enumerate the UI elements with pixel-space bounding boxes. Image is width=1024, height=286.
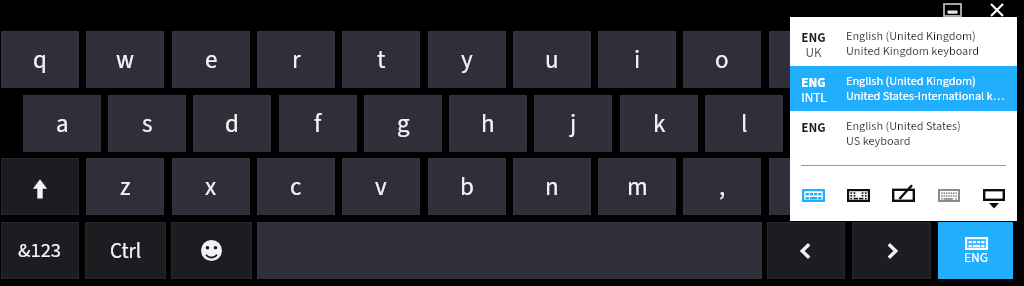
button[interactable]: y	[428, 31, 506, 88]
staticText: h	[481, 106, 495, 142]
button[interactable]: t	[342, 31, 420, 88]
staticText: INTL	[801, 88, 827, 106]
staticText: United Kingdom keyboard	[846, 43, 980, 60]
button[interactable]: Right	[852, 222, 931, 279]
staticText: United States-International k…	[846, 88, 1005, 105]
button[interactable]: i	[598, 31, 676, 88]
staticText: q	[33, 42, 47, 78]
staticText: x	[205, 169, 217, 205]
staticText: US keyboard	[846, 133, 911, 150]
staticText: ENG	[801, 28, 826, 46]
staticText: b	[460, 169, 474, 205]
staticText: j	[570, 106, 577, 142]
staticText: z	[120, 169, 131, 205]
staticText: k	[653, 106, 666, 142]
button[interactable]: o	[683, 31, 761, 88]
button[interactable]: a	[23, 95, 101, 152]
button[interactable]: k	[620, 95, 698, 152]
staticText: ,	[719, 169, 726, 205]
staticText: l	[741, 106, 748, 142]
button[interactable]: Shift	[1, 158, 79, 215]
staticText: m	[627, 169, 648, 205]
staticText: ENG	[964, 248, 988, 266]
staticText: r	[292, 42, 301, 78]
staticText: y	[461, 42, 473, 78]
button[interactable]: n	[513, 158, 591, 215]
staticText: g	[397, 106, 410, 142]
staticText: English (United Kingdom)	[846, 73, 976, 90]
staticText: English (United States)	[846, 118, 961, 135]
staticText: f	[314, 106, 322, 142]
button[interactable]: d	[193, 95, 271, 152]
button[interactable]: z	[86, 158, 164, 215]
button[interactable]: Emoji	[171, 222, 252, 279]
button[interactable]: h	[449, 95, 527, 152]
button[interactable]: x	[172, 158, 250, 215]
staticText: o	[715, 42, 729, 78]
staticText: u	[545, 42, 559, 78]
button[interactable]: Choose display	[983, 189, 1005, 208]
button[interactable]: Split keyboard layout	[847, 189, 870, 202]
staticText: &123	[18, 236, 62, 265]
button[interactable]: v	[342, 158, 420, 215]
staticText: ENG	[801, 118, 826, 136]
button[interactable]: .	[769, 158, 847, 215]
button[interactable]: Ctrl	[85, 222, 166, 279]
button[interactable]: p	[769, 31, 847, 88]
staticText: v	[375, 169, 387, 205]
button[interactable]: q	[1, 31, 79, 88]
staticText: e	[205, 42, 218, 78]
staticText: .	[805, 169, 812, 205]
staticText: i	[634, 42, 641, 78]
button[interactable]: c	[257, 158, 335, 215]
staticText: c	[290, 169, 302, 205]
button[interactable]: s	[108, 95, 186, 152]
button[interactable]: Handwriting panel	[892, 185, 915, 202]
staticText: ENG	[801, 73, 826, 91]
staticText: English (United Kingdom)	[846, 28, 976, 45]
button[interactable]: l	[705, 95, 783, 152]
staticText: a	[56, 106, 69, 142]
button[interactable]: r	[257, 31, 335, 88]
button[interactable]: u	[513, 31, 591, 88]
button[interactable]: g	[364, 95, 442, 152]
button[interactable]: Standard keyboard layout	[938, 189, 960, 202]
button[interactable]: ENG	[790, 21, 1017, 66]
button[interactable]: Touch keyboard layout	[802, 189, 825, 202]
button[interactable]: ENG	[790, 111, 1017, 156]
button[interactable]: Left	[767, 222, 845, 279]
button[interactable]: w	[86, 31, 164, 88]
button[interactable]: ,	[683, 158, 761, 215]
button[interactable]: ENG	[790, 66, 1017, 111]
staticText: d	[225, 106, 239, 142]
button[interactable]: Dock keyboard	[943, 3, 962, 17]
staticText: UK	[805, 43, 822, 61]
button[interactable]: m	[598, 158, 676, 215]
staticText: Ctrl	[110, 236, 142, 266]
button[interactable]: ENG	[938, 222, 1013, 279]
button[interactable]: b	[428, 158, 506, 215]
button[interactable]: Close	[991, 4, 1003, 16]
staticText: t	[377, 42, 386, 78]
staticText: w	[116, 42, 134, 78]
staticText: p	[801, 42, 815, 78]
button[interactable]: f	[279, 95, 357, 152]
staticText: s	[142, 106, 153, 142]
button[interactable]: &123	[1, 222, 79, 279]
button[interactable]: j	[534, 95, 612, 152]
staticText: n	[545, 169, 559, 205]
button[interactable]: e	[172, 31, 250, 88]
